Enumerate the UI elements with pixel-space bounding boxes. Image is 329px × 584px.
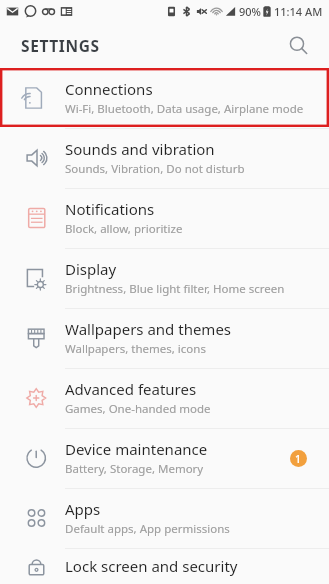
staticText: SETTINGS [21, 35, 100, 56]
staticText: Block, allow, prioritize [65, 221, 183, 237]
button[interactable]: Device maintenance [0, 428, 329, 488]
staticText: Default apps, App permissions [65, 521, 230, 537]
staticText: Wallpapers and themes [65, 319, 232, 339]
button[interactable]: Notifications [0, 188, 329, 248]
button[interactable]: Wallpapers and themes [0, 308, 329, 368]
staticText: 1 [295, 452, 302, 466]
button[interactable]: Connections [0, 68, 329, 128]
staticText: Display [65, 259, 117, 279]
staticText: Lock screen and security [65, 556, 238, 576]
staticText: Apps [65, 499, 101, 519]
staticText: 11:14 AM [274, 4, 323, 19]
staticText: Wi-Fi, Bluetooth, Data usage, Airplane m… [65, 101, 304, 117]
staticText: Battery, Storage, Memory [65, 461, 204, 477]
staticText: Connections [65, 79, 153, 99]
button[interactable]: Lock screen and security [0, 548, 329, 584]
staticText: Games, One-handed mode [65, 401, 211, 417]
button[interactable]: Display [0, 248, 329, 308]
staticText: Device maintenance [65, 439, 208, 459]
staticText: Wallpapers, themes, icons [65, 341, 206, 357]
staticText: Sounds, Vibration, Do not disturb [65, 161, 245, 177]
button[interactable]: Advanced features [0, 368, 329, 428]
staticText: Notifications [65, 199, 155, 219]
staticText: Advanced features [65, 379, 197, 399]
button[interactable]: Apps [0, 488, 329, 548]
staticText: 90% [239, 4, 261, 19]
button[interactable]: Search [281, 28, 315, 62]
staticText: Brightness, Blue light filter, Home scre… [65, 281, 285, 297]
button[interactable]: Sounds and vibration [0, 128, 329, 188]
staticText: Sounds and vibration [65, 139, 215, 159]
